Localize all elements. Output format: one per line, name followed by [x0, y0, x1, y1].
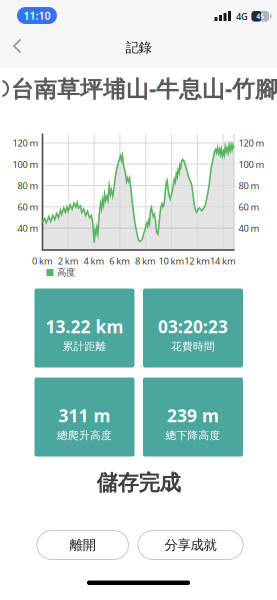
staticText: 累計距離 [62, 340, 106, 353]
staticText: 60 m [238, 201, 259, 213]
staticText: 記錄 [125, 39, 151, 56]
staticText: 120 m [12, 137, 38, 149]
staticText: 離開 [70, 537, 96, 553]
staticText: 總爬升高度 [57, 429, 112, 442]
staticText: 儲存完成 [96, 470, 180, 496]
staticText: 311 m [58, 404, 110, 427]
staticText: 0 km [32, 255, 53, 267]
staticText: 120 m [238, 137, 264, 149]
staticText: 12 km [184, 255, 210, 267]
staticText: 14 km [210, 255, 236, 267]
staticText: 2 km [58, 255, 79, 267]
staticText: 10 km [158, 255, 184, 267]
staticText: 高度 [57, 267, 75, 278]
staticText: 11:10 [23, 8, 50, 23]
staticText: 4G [236, 10, 248, 23]
staticText: 4 km [83, 255, 104, 267]
staticText: 239 m [167, 404, 219, 427]
staticText: 8 km [135, 255, 156, 267]
staticText: 40 m [238, 222, 259, 234]
staticText: 花費時間 [171, 340, 215, 353]
staticText: 總下降高度 [165, 429, 220, 442]
staticText: 6 km [109, 255, 130, 267]
staticText: 100 m [238, 158, 264, 170]
staticText: 03:20:23 [158, 315, 228, 338]
staticText: 台南草坪埔山-牛息山-竹腳厝山 [11, 73, 277, 103]
staticText: 45 [256, 12, 264, 21]
staticText: 80 m [238, 179, 259, 192]
staticText: 40 m [17, 222, 38, 234]
staticText: 分享成就 [164, 537, 216, 553]
staticText: 13.22 km [45, 315, 123, 338]
staticText: 100 m [12, 158, 38, 170]
staticText: 60 m [17, 201, 38, 213]
staticText: 80 m [17, 179, 38, 192]
